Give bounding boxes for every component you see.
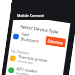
staticText: Mobile Connect [17,13,44,18]
staticText: Add Bluetooth Device [20,31,46,46]
staticText: Scanning [47,38,64,45]
staticText: Available [15,71,29,75]
button[interactable]: Scanning [45,36,66,48]
button[interactable]: Add Bluetooth Device [10,30,68,49]
button[interactable]: NFC reader [5,64,63,75]
staticText: Connected [17,59,34,65]
staticText: My Devices [11,48,30,56]
button[interactable]: Back [12,19,70,38]
button[interactable]: Thermal printer [7,52,65,71]
staticText: NFC reader [16,66,39,74]
other: Back [13,21,21,29]
staticText: Thermal printer [18,54,48,63]
staticText: Select Device Type [20,23,60,35]
